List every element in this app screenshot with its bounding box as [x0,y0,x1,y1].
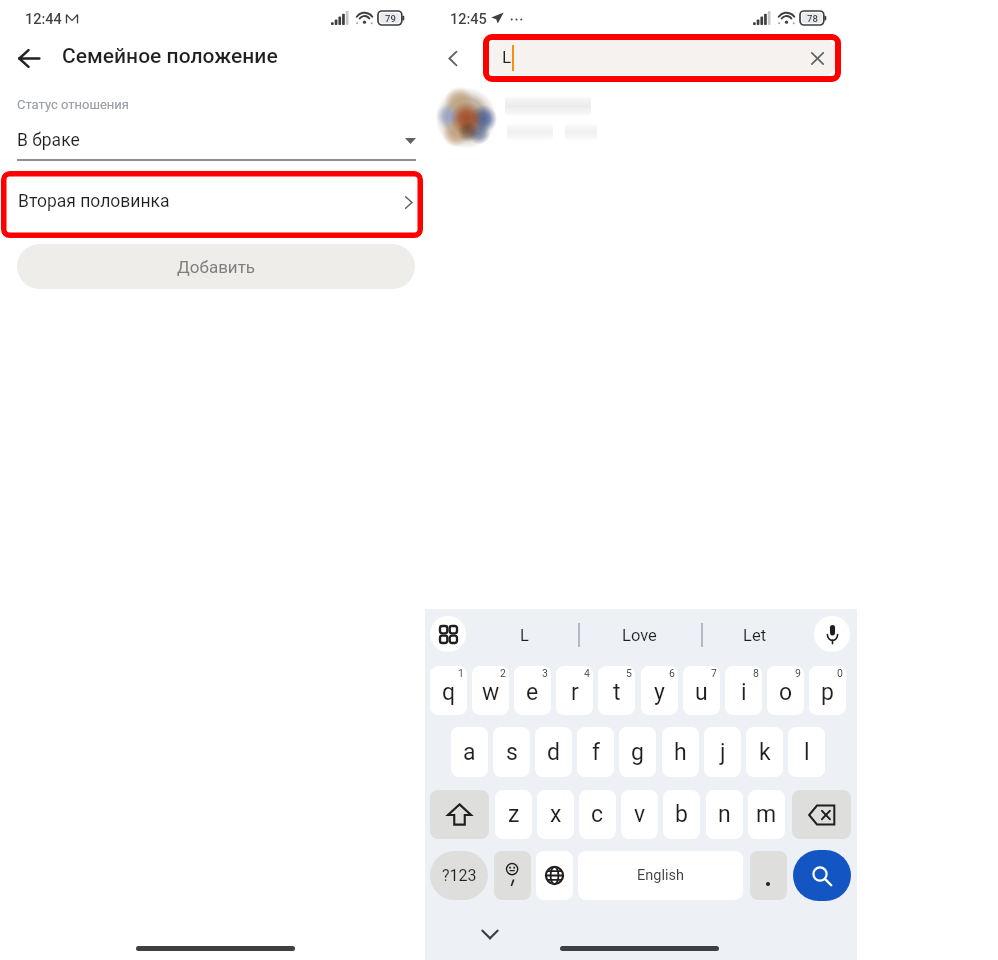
button[interactable]: u [683,666,720,715]
button[interactable]: n [706,790,743,839]
staticText: 4 [584,667,590,679]
button[interactable]: Voice input [814,616,850,652]
button[interactable]: Добавить [17,244,415,289]
staticText: z [508,801,520,828]
button[interactable]: English [578,851,743,900]
staticText: Статус отношения [17,97,129,112]
staticText: Добавить [177,257,256,277]
staticText: Семейное положение [62,44,278,69]
staticText: r [571,679,579,706]
button[interactable]: Love [584,609,694,661]
button[interactable]: В браке [0,122,424,162]
button[interactable]: i [725,666,762,715]
button[interactable]: Let [700,609,810,661]
button[interactable]: b [663,790,700,839]
staticText: В браке [17,130,80,151]
button[interactable]: Emoji [494,851,531,900]
button[interactable]: a [451,727,488,777]
staticText: 3 [542,667,548,679]
staticText: k [759,739,771,766]
staticText: u [695,679,708,706]
staticText: i [741,679,747,706]
button[interactable]: p [809,666,846,715]
staticText: 0 [837,667,843,679]
staticText: c [591,801,604,828]
button[interactable]: Clear [804,45,831,72]
staticText: f [592,739,600,766]
button[interactable]: L [489,40,835,75]
staticText: 2 [500,667,506,679]
staticText: 9 [795,667,801,679]
button[interactable]: e [514,666,551,715]
staticText: L [520,626,529,645]
staticText: Love [622,626,657,645]
button[interactable]: j [704,727,741,777]
staticText: j [720,739,726,766]
staticText: b [675,801,688,828]
staticText: v [634,801,646,828]
button[interactable]: d [535,727,572,777]
button[interactable]: t [598,666,635,715]
staticText: 8 [753,667,759,679]
staticText: g [631,739,644,766]
staticText: ?123 [442,866,477,885]
button[interactable]: c [579,790,616,839]
button[interactable]: Period [750,851,787,900]
staticText: x [550,801,562,828]
staticText: a [463,739,476,766]
button[interactable]: Search [793,850,851,901]
button[interactable]: Вторая половинка [7,177,417,232]
staticText: q [442,679,456,706]
staticText: p [821,679,834,706]
button[interactable]: m [748,790,785,839]
staticText: l [804,739,810,766]
button[interactable]: Hide keyboard [472,917,507,952]
button[interactable]: f [577,727,614,777]
staticText: w [482,679,500,706]
staticText: t [613,679,621,706]
staticText: Let [743,626,767,645]
button[interactable]: L [469,609,579,661]
staticText: 6 [669,667,675,679]
button[interactable]: ?123 [430,851,488,900]
staticText: h [674,739,687,766]
staticText: L [502,47,512,67]
staticText: d [547,739,560,766]
button[interactable]: y [641,666,678,715]
button[interactable]: w [472,666,509,715]
button[interactable]: z [495,790,532,839]
staticText: e [526,679,539,706]
staticText: 1 [458,667,464,679]
staticText: 5 [626,667,632,679]
staticText: 79 [385,13,396,24]
staticText: o [779,679,793,706]
button[interactable]: l [788,727,825,777]
staticText: 7 [711,667,717,679]
button[interactable]: Toolbar [430,616,466,652]
button[interactable]: Back [9,38,49,78]
button[interactable]: x [537,790,574,839]
staticText: 12:45 [450,11,487,28]
button[interactable]: o [767,666,804,715]
staticText: 78 [807,13,818,24]
staticText: m [756,801,777,828]
staticText: English [637,867,684,884]
staticText: Вторая половинка [18,191,170,212]
button[interactable]: g [619,727,656,777]
button[interactable]: r [556,666,593,715]
staticText: n [718,801,731,828]
button[interactable]: s [493,727,530,777]
staticText: s [506,739,518,766]
button[interactable]: Backspace [792,790,851,839]
button[interactable]: Change language [536,851,573,900]
staticText: 12:44 [25,11,62,28]
button[interactable]: k [746,727,783,777]
button[interactable]: v [621,790,658,839]
button[interactable]: q [430,666,467,715]
button[interactable]: h [662,727,699,777]
button[interactable]: Back [435,40,471,76]
button[interactable]: Shift [430,790,489,839]
staticText: y [654,679,665,706]
